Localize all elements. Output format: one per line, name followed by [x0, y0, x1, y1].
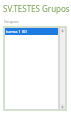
staticText: SV.TESTES Grupos [3, 3, 70, 14]
staticText: turma 1 (0) [6, 29, 27, 34]
button[interactable]: Scroll up [59, 27, 65, 33]
button[interactable]: Scroll down [59, 104, 65, 110]
staticText: Grupos: [4, 19, 19, 24]
button[interactable]: turma 1 (0) [5, 28, 58, 35]
